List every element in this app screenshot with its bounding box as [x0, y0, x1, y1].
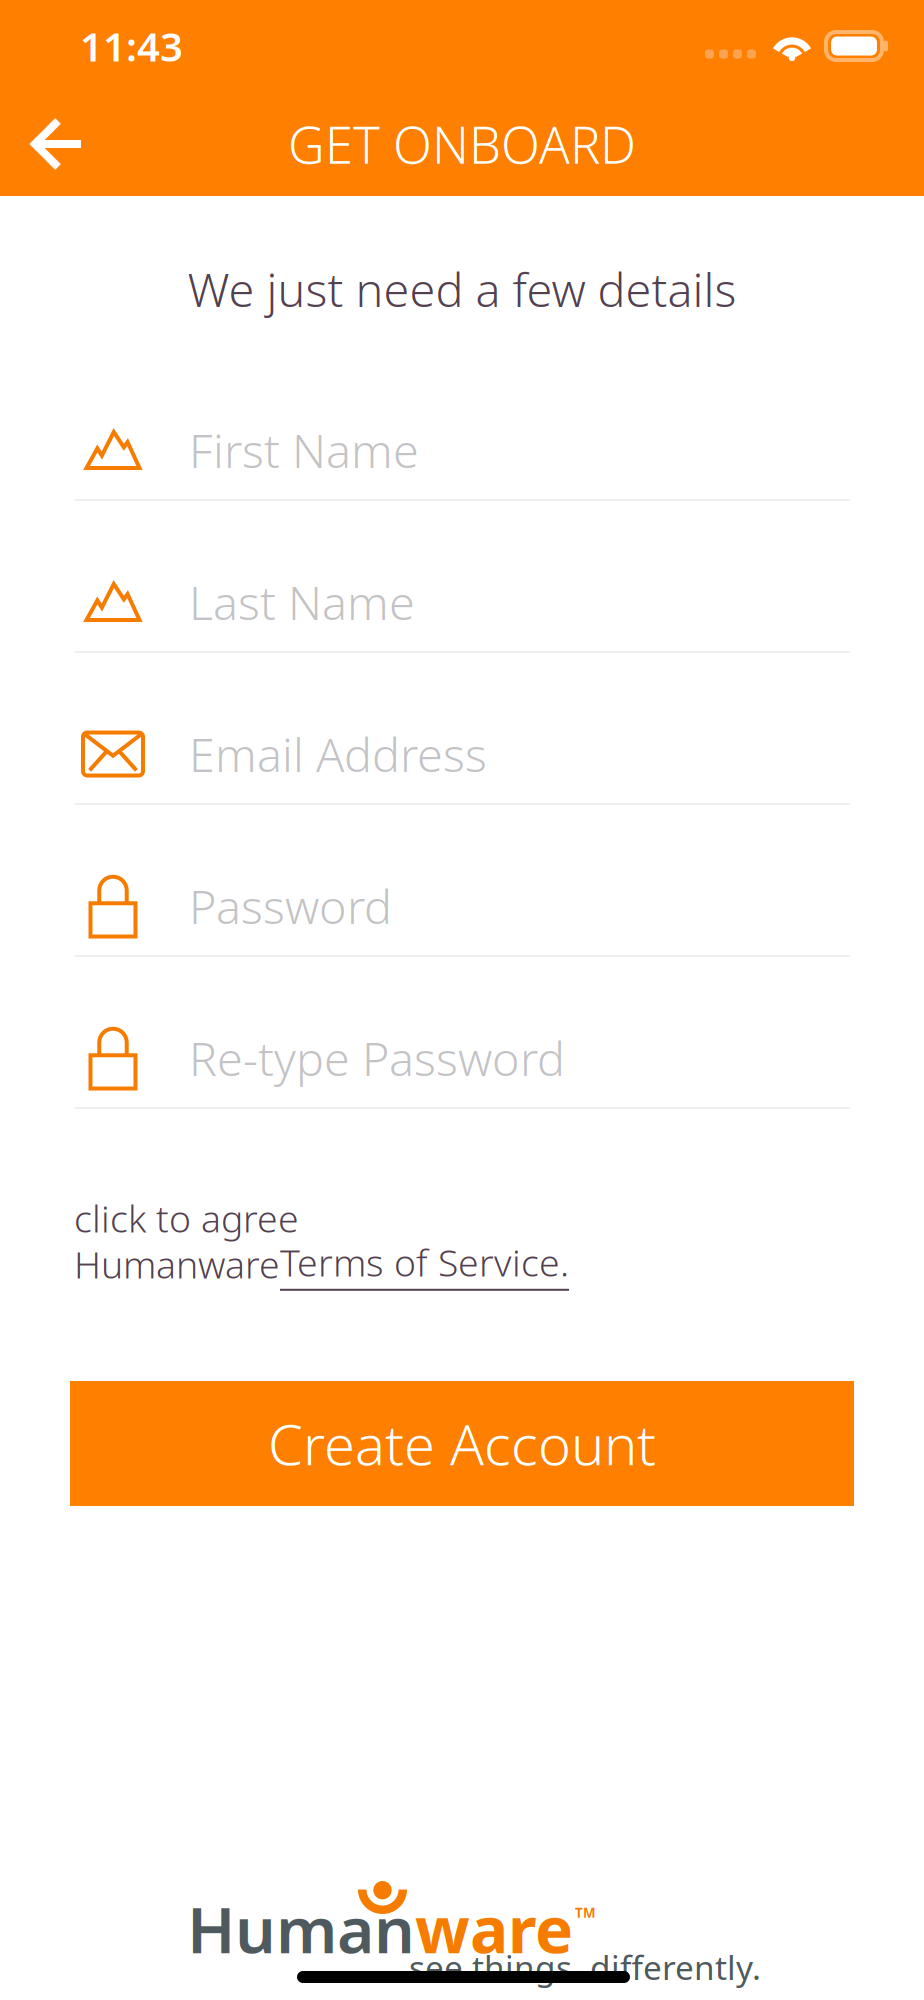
staticText: Last Name — [189, 571, 415, 633]
staticText: ware — [415, 1886, 573, 1971]
staticText: GET ONBOARD — [288, 110, 636, 178]
staticText: Humanware — [74, 1239, 280, 1289]
button[interactable]: Back — [0, 92, 116, 196]
staticText: Human — [187, 1886, 415, 1971]
staticText: Terms of Service. — [280, 1237, 569, 1287]
button[interactable]: Create Account — [70, 1381, 854, 1506]
staticText: Re-type Password — [189, 1027, 565, 1089]
staticText: Email Address — [189, 723, 487, 785]
button[interactable]: click to agree — [0, 1109, 924, 1287]
staticText: First Name — [189, 419, 419, 481]
staticText: TM — [575, 1904, 596, 1921]
staticText: 11:43 — [80, 19, 183, 72]
staticText: see things. differently. — [409, 1945, 761, 1989]
staticText: Create Account — [268, 1406, 656, 1481]
staticText: We just need a few details — [187, 258, 736, 320]
staticText: click to agree — [74, 1193, 299, 1243]
staticText: Password — [189, 875, 392, 937]
